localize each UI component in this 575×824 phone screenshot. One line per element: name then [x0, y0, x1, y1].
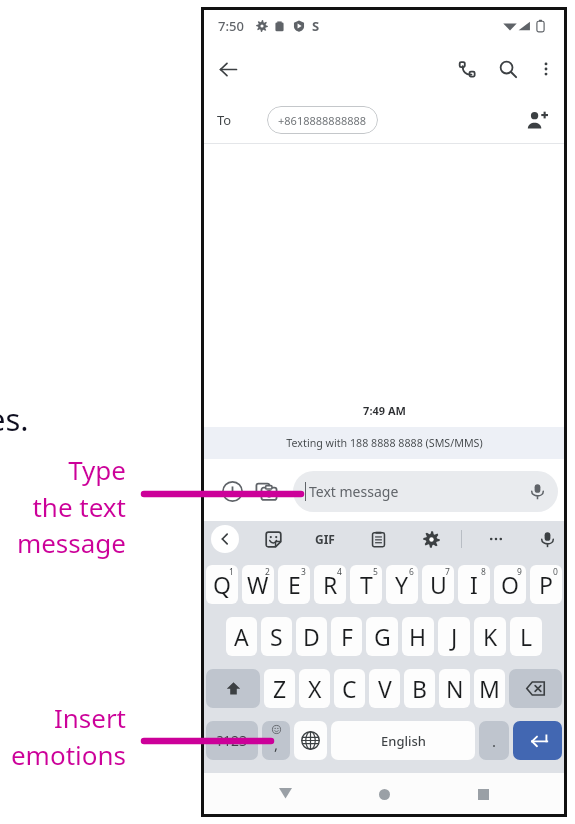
button[interactable]: P [530, 565, 562, 604]
staticText: To [217, 111, 232, 129]
staticText: 0 [553, 566, 558, 578]
button[interactable]: A [226, 617, 257, 656]
button[interactable]: B [404, 669, 435, 708]
button[interactable]: J [438, 617, 470, 656]
button[interactable]: X [299, 669, 330, 708]
staticText: Text message [309, 482, 399, 501]
button[interactable]: Text message [293, 471, 558, 512]
staticText: Q [213, 569, 231, 600]
button[interactable]: Z [264, 669, 295, 708]
staticText: P [539, 569, 553, 600]
staticText: R [323, 569, 338, 600]
button[interactable]: H [402, 617, 434, 656]
staticText: English [381, 732, 426, 750]
button[interactable]: More options [527, 50, 565, 88]
staticText: N [446, 673, 464, 704]
staticText: 4 [337, 566, 342, 578]
button[interactable]: +8618888888888 [267, 106, 378, 134]
staticText: X [308, 673, 322, 704]
button[interactable]: Back [209, 50, 247, 88]
staticText: 3 [301, 566, 306, 578]
staticText: es. [0, 398, 29, 440]
button[interactable]: S [261, 617, 292, 656]
staticText: J [451, 621, 458, 652]
staticText: O [501, 569, 519, 600]
button[interactable]: W [242, 565, 274, 604]
button[interactable]: N [439, 669, 470, 708]
button[interactable]: English [331, 721, 475, 760]
staticText: 5 [373, 566, 378, 578]
staticText: +8618888888888 [278, 113, 367, 128]
button[interactable]: . [479, 721, 509, 760]
button[interactable]: U [422, 565, 454, 604]
staticText: . [492, 731, 497, 751]
staticText: Y [395, 569, 409, 600]
button[interactable]: O [494, 565, 526, 604]
staticText: ?123 [217, 731, 248, 750]
button[interactable]: GIF [310, 524, 340, 554]
button[interactable]: I [458, 565, 490, 604]
staticText: L [520, 621, 533, 652]
staticText: U [430, 569, 447, 600]
staticText: T [360, 569, 373, 600]
button[interactable]: Shift [206, 669, 260, 708]
button[interactable]: Add contact [520, 103, 554, 137]
staticText: B [412, 673, 427, 704]
staticText: S [270, 621, 283, 652]
button[interactable]: G [366, 617, 398, 656]
button[interactable]: Call [448, 50, 486, 88]
button[interactable]: Expand toolbar [211, 525, 239, 553]
staticText: S [312, 17, 320, 35]
staticText: 6 [409, 566, 414, 578]
button[interactable]: Backspace [509, 669, 562, 708]
staticText: H [409, 621, 427, 652]
button[interactable]: Attach [215, 474, 249, 508]
staticText: E [288, 569, 301, 600]
staticText: Texting with 188 8888 8888 (SMS/MMS) [286, 436, 483, 451]
staticText: GIF [315, 531, 335, 547]
staticText: V [378, 673, 392, 704]
button[interactable]: Emoji and comma [262, 721, 290, 760]
staticText: D [303, 621, 320, 652]
staticText: Z [273, 673, 287, 704]
staticText: 9 [517, 566, 522, 578]
button[interactable]: Y [386, 565, 418, 604]
button[interactable]: T [350, 565, 382, 604]
button[interactable]: V [369, 669, 400, 708]
button[interactable]: Keyboard settings [418, 526, 444, 552]
staticText: 7 [445, 566, 450, 578]
button[interactable]: F [331, 617, 362, 656]
button[interactable]: Search [489, 50, 527, 88]
staticText: A [234, 621, 249, 652]
button[interactable]: Back [267, 776, 303, 812]
staticText: C [342, 673, 357, 704]
staticText: 1 [229, 566, 234, 578]
button[interactable]: D [296, 617, 327, 656]
button[interactable]: Voice input [534, 526, 560, 552]
staticText: 7:49 AM [363, 403, 406, 418]
button[interactable]: Clipboard [365, 526, 391, 552]
staticText: Type the text message [0, 452, 126, 560]
button[interactable]: More keyboard options [483, 526, 509, 552]
button[interactable]: M [474, 669, 505, 708]
staticText: G [374, 621, 391, 652]
staticText: W [247, 569, 269, 600]
staticText: Insert emotions [0, 700, 126, 772]
button[interactable]: E [278, 565, 310, 604]
button[interactable]: ?123 [206, 721, 258, 760]
button[interactable]: C [334, 669, 365, 708]
button[interactable]: Enter [513, 721, 562, 760]
button[interactable]: Recents [465, 776, 501, 812]
button[interactable]: Camera [249, 474, 283, 508]
button[interactable]: K [474, 617, 506, 656]
staticText: M [479, 673, 500, 704]
staticText: 2 [265, 566, 270, 578]
button[interactable]: L [510, 617, 542, 656]
staticText: , [274, 734, 279, 754]
button[interactable]: Q [206, 565, 238, 604]
button[interactable]: Change language [294, 721, 327, 760]
staticText: I [470, 569, 478, 600]
button[interactable]: Home [366, 776, 402, 812]
button[interactable]: Stickers [260, 526, 286, 552]
button[interactable]: R [314, 565, 346, 604]
